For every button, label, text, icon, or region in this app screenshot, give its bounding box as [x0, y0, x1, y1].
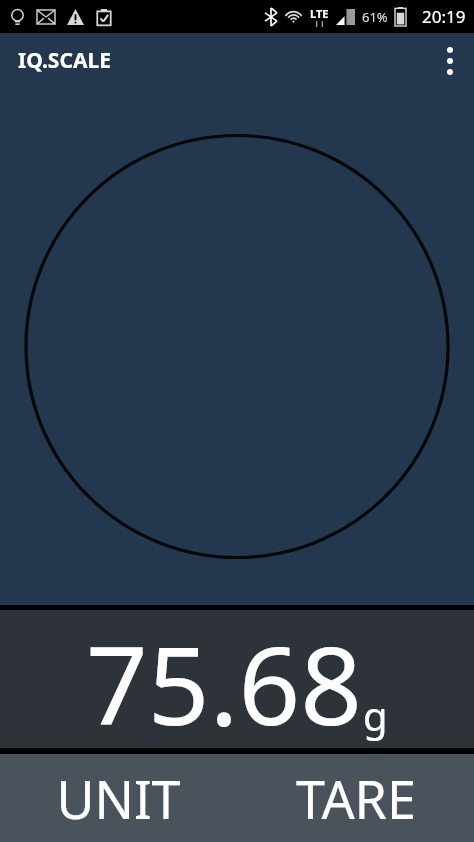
staticText: 75.68: [86, 610, 363, 748]
staticText: UNIT: [56, 763, 181, 834]
button[interactable]: UNIT: [0, 754, 237, 842]
staticText: 20:19: [422, 5, 466, 28]
button[interactable]: TARE: [237, 754, 474, 842]
staticText: TARE: [296, 763, 416, 834]
staticText: 61%: [362, 8, 388, 26]
staticText: g: [363, 688, 388, 742]
button[interactable]: Scale platform: [0, 88, 474, 605]
staticText: IQ.SCALE: [18, 46, 111, 75]
staticText: LTE: [310, 6, 329, 21]
button[interactable]: More options: [426, 37, 474, 85]
